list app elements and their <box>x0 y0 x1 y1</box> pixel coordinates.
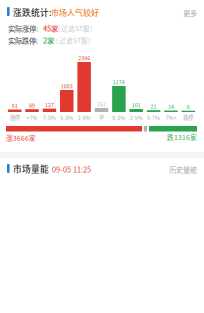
staticText: 5-2% <box>60 114 73 121</box>
staticText: 21 <box>151 102 157 110</box>
staticText: 1003 <box>61 82 73 90</box>
staticText: 更多 <box>183 7 197 18</box>
staticText: （过滤ST股） <box>54 23 97 33</box>
staticText: 09-05 11:25 <box>52 164 91 175</box>
staticText: 平 <box>99 114 104 121</box>
staticText: 跌1316家 <box>167 132 197 142</box>
staticText: 2396 <box>78 54 90 62</box>
staticText: 6 <box>187 103 190 110</box>
staticText: 7-5% <box>43 114 56 121</box>
staticText: 历史量能 <box>169 164 197 175</box>
button[interactable]: 涨跌统计: <box>0 0 204 20</box>
staticText: 61 <box>12 102 18 109</box>
staticText: 5-7% <box>147 114 160 121</box>
staticText: 实际跌停: <box>8 35 38 46</box>
staticText: 涨跌统计: <box>13 6 52 18</box>
staticText: 2家 <box>43 35 54 46</box>
staticText: 2-5% <box>130 114 143 121</box>
staticText: 跌停 <box>183 114 193 121</box>
staticText: 1174 <box>113 78 125 86</box>
staticText: 7%< <box>165 114 176 121</box>
staticText: 45家 <box>43 23 58 34</box>
staticText: 162 <box>97 100 106 108</box>
staticText: 89 <box>29 101 35 109</box>
staticText: >7% <box>26 114 37 121</box>
staticText: 2-0% <box>78 114 91 121</box>
staticText: 涨停 <box>10 114 20 121</box>
staticText: 市场量能 <box>13 162 49 175</box>
staticText: 实际涨停: <box>8 23 38 34</box>
staticText: 127 <box>45 101 54 108</box>
staticText: 0-2% <box>112 114 125 121</box>
button[interactable]: 市场量能 <box>0 159 204 179</box>
staticText: 14 <box>168 103 174 110</box>
staticText: （过滤ST股） <box>52 35 95 45</box>
staticText: 市场人气较好 <box>51 6 99 18</box>
staticText: 涨3666家 <box>6 133 36 143</box>
staticText: 101 <box>132 101 141 109</box>
